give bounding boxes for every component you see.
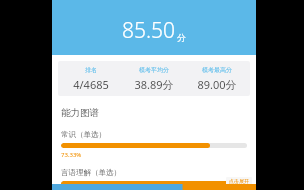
button[interactable]: 模考平均分 — [122, 66, 185, 92]
staticText: 4/4685 — [73, 77, 109, 92]
staticText: 言语理解（单选） — [61, 168, 121, 177]
staticText: 常识（单选） — [61, 130, 106, 139]
staticText: 89.00分 — [197, 77, 237, 92]
staticText: 38.89分 — [134, 77, 174, 92]
staticText: 模考最高分 — [202, 66, 232, 74]
button[interactable]: 详情 — [226, 177, 252, 185]
button[interactable]: 排名 — [60, 66, 122, 92]
staticText: 模考平均分 — [139, 66, 169, 74]
staticText: 85.50 — [122, 16, 176, 45]
button[interactable]: 常识（单选） — [61, 130, 247, 159]
staticText: 点击展开 — [229, 178, 249, 184]
staticText: 分 — [177, 32, 186, 43]
staticText: 能力图谱 — [61, 107, 99, 119]
button[interactable]: 言语理解（单选） — [61, 168, 247, 186]
button[interactable]: 模考最高分 — [185, 66, 248, 92]
staticText: 排名 — [85, 66, 97, 74]
staticText: 73.33% — [61, 151, 82, 159]
